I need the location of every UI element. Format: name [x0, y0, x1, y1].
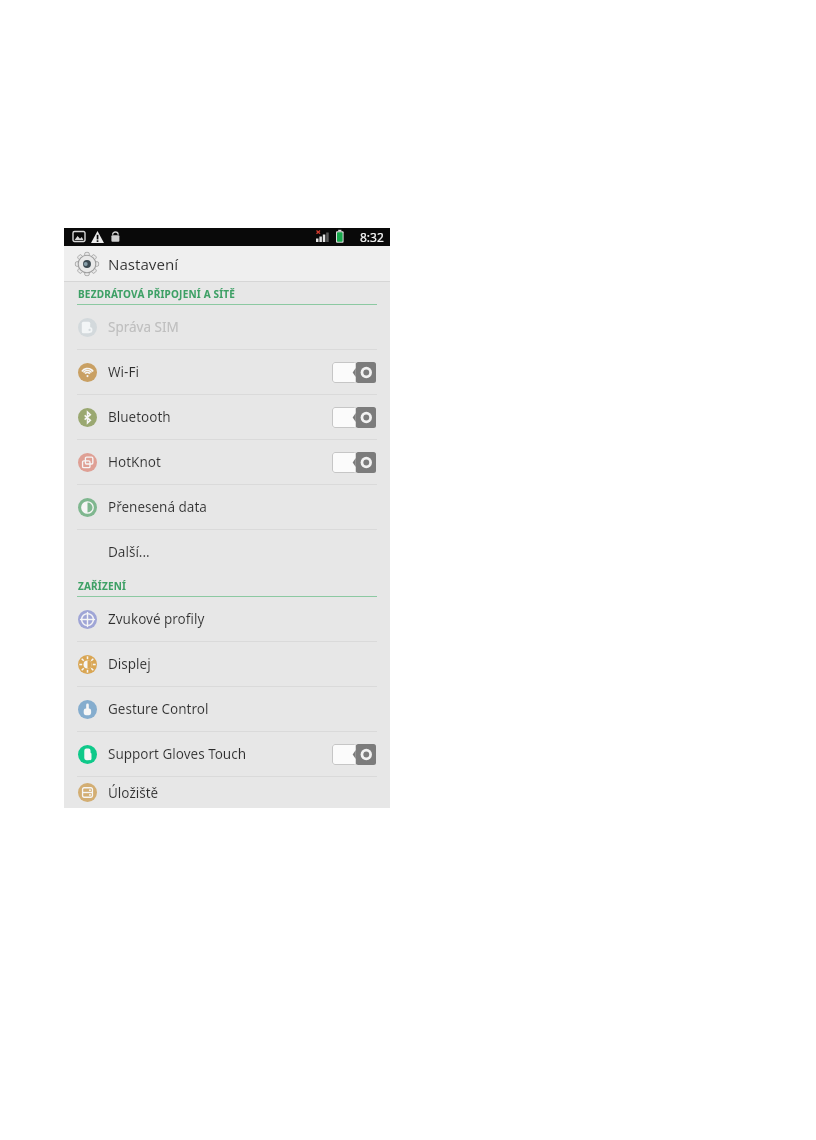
staticText: HotKnot	[108, 453, 161, 471]
staticText: Wi-Fi	[108, 363, 139, 381]
staticText: Support Gloves Touch	[108, 745, 247, 763]
button[interactable]: HotKnot	[64, 440, 390, 485]
staticText: BEZDRÁTOVÁ PŘIPOJENÍ A SÍTĚ	[78, 287, 236, 301]
button[interactable]: Bluetooth	[64, 395, 390, 440]
staticText: Další...	[108, 543, 150, 561]
staticText: Displej	[108, 655, 151, 673]
staticText: Bluetooth	[108, 408, 171, 426]
button[interactable]: Toggle Support Gloves Touch	[332, 744, 376, 765]
button[interactable]: Správa SIM	[64, 305, 390, 350]
staticText: Úložiště	[108, 784, 159, 802]
staticText: 8:32	[360, 229, 384, 245]
staticText: Přenesená data	[108, 498, 207, 516]
button[interactable]: Displej	[64, 642, 390, 687]
button[interactable]: Nastavení	[64, 246, 390, 282]
button[interactable]: Gesture Control	[64, 687, 390, 732]
staticText: Zvukové profily	[108, 610, 205, 628]
button[interactable]: Toggle HotKnot	[332, 452, 376, 473]
button[interactable]: Další...	[64, 530, 390, 574]
button[interactable]: Zvukové profily	[64, 597, 390, 642]
staticText: Správa SIM	[108, 318, 179, 336]
button[interactable]: Přenesená data	[64, 485, 390, 530]
staticText: Nastavení	[108, 254, 179, 274]
button[interactable]: Wi-Fi	[64, 350, 390, 395]
staticText: ZAŘÍZENÍ	[78, 579, 127, 593]
button[interactable]: Toggle Bluetooth	[332, 407, 376, 428]
staticText: Gesture Control	[108, 700, 209, 718]
button[interactable]: Úložiště	[64, 777, 390, 808]
button[interactable]: Toggle Wi-Fi	[332, 362, 376, 383]
button[interactable]: Support Gloves Touch	[64, 732, 390, 777]
